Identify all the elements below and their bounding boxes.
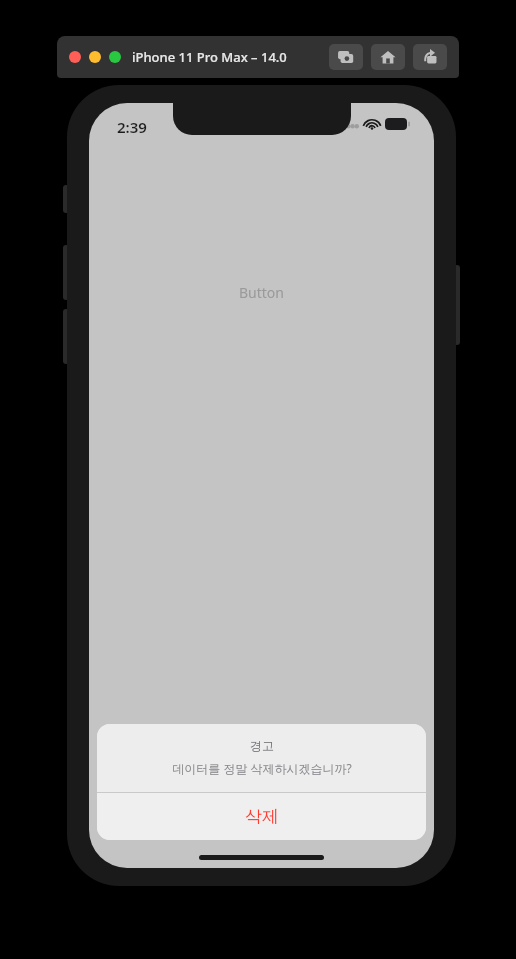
button[interactable]: Zoom [109,51,121,63]
button[interactable]: Button [239,283,284,302]
button[interactable]: 삭제 [97,793,426,840]
staticText: 경고 [250,738,274,753]
button[interactable]: Home [371,44,405,70]
button[interactable]: Screenshot [329,44,363,70]
button[interactable]: Share [413,44,447,70]
button[interactable]: Minimize [89,51,101,63]
staticText: iPhone 11 Pro Max – 14.0 [132,48,287,66]
staticText: Button [239,283,284,302]
button[interactable]: Close [69,51,81,63]
staticText: 데이터를 정말 삭제하시겠습니까? [172,760,352,776]
staticText: 삭제 [245,806,279,827]
staticText: 2:39 [117,117,147,137]
